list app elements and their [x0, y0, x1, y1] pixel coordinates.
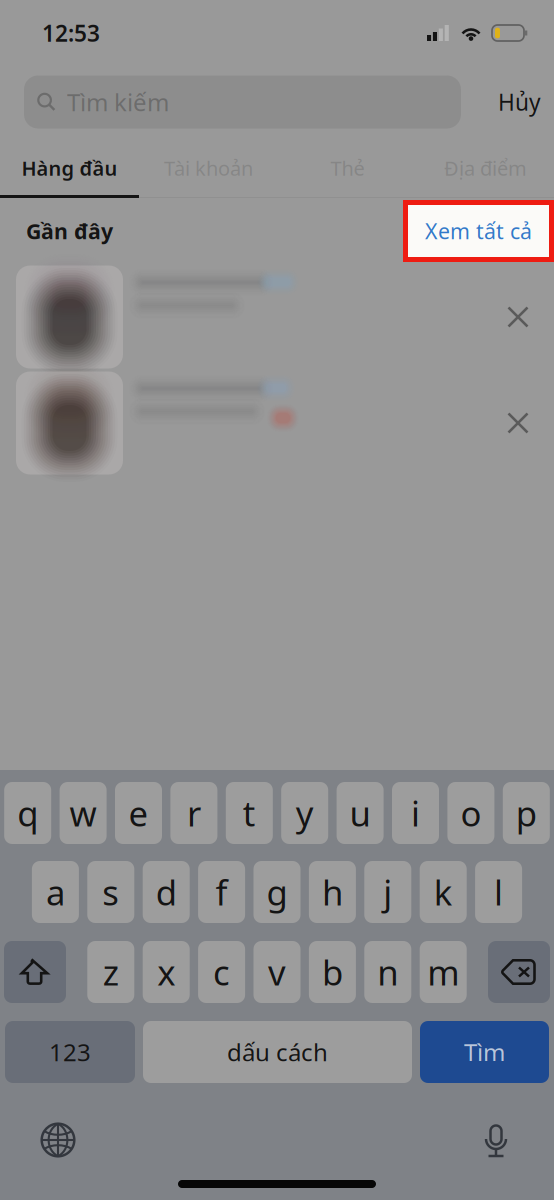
button[interactable]: i: [392, 782, 439, 844]
staticText: 12:53: [42, 18, 100, 48]
staticText: g: [266, 869, 287, 915]
staticText: d: [156, 869, 177, 915]
staticText: l: [494, 869, 503, 915]
staticText: Hủy: [498, 87, 541, 117]
staticText: Tìm kiếm: [67, 86, 169, 118]
staticText: 123: [49, 1036, 91, 1068]
button[interactable]: n: [364, 941, 411, 1003]
button[interactable]: r: [170, 782, 217, 844]
button[interactable]: d: [143, 861, 190, 923]
button[interactable]: Xem tất cả: [403, 200, 554, 262]
staticText: j: [383, 869, 392, 915]
button[interactable]: Tìm kiếm: [24, 75, 461, 128]
button[interactable]: g: [253, 861, 300, 923]
staticText: p: [516, 790, 537, 836]
button[interactable]: s: [87, 861, 134, 923]
button[interactable]: Đọc chính tả: [468, 1112, 524, 1168]
staticText: i: [411, 790, 420, 836]
button[interactable]: p: [503, 782, 550, 844]
button[interactable]: Hủy: [485, 75, 554, 128]
button[interactable]: dấu cách: [143, 1021, 412, 1083]
staticText: f: [216, 869, 228, 915]
button[interactable]: m: [420, 941, 467, 1003]
button[interactable]: Tài khoản: [139, 138, 278, 198]
button[interactable]: c: [198, 941, 245, 1003]
button[interactable]: l: [475, 861, 522, 923]
button[interactable]: w: [60, 782, 107, 844]
button[interactable]: q: [4, 782, 51, 844]
button[interactable]: b: [309, 941, 356, 1003]
staticText: Địa điểm: [444, 155, 527, 181]
staticText: dấu cách: [227, 1036, 328, 1068]
staticText: h: [322, 869, 343, 915]
button[interactable]: Tìm: [420, 1021, 549, 1083]
button[interactable]: k: [420, 861, 467, 923]
button[interactable]: Đổi bàn phím: [30, 1112, 86, 1168]
staticText: s: [102, 869, 119, 915]
button[interactable]: j: [364, 861, 411, 923]
staticText: k: [434, 869, 453, 915]
button[interactable]: x: [143, 941, 190, 1003]
button[interactable]: 123: [5, 1021, 135, 1083]
button[interactable]: Hàng đầu: [0, 138, 139, 198]
staticText: n: [377, 949, 398, 995]
button[interactable]: o: [447, 782, 494, 844]
button[interactable]: t: [226, 782, 273, 844]
staticText: Thẻ: [330, 155, 364, 181]
button[interactable]: a: [32, 861, 79, 923]
staticText: y: [296, 790, 314, 836]
staticText: t: [243, 790, 256, 836]
staticText: x: [157, 949, 175, 995]
staticText: m: [427, 949, 459, 995]
button[interactable]: Địa điểm: [417, 138, 554, 198]
button[interactable]: Xóa: [491, 290, 545, 344]
staticText: Tài khoản: [164, 155, 253, 181]
staticText: o: [460, 790, 481, 836]
button[interactable]: Shift: [4, 941, 66, 1003]
staticText: Gần đây: [26, 217, 113, 245]
staticText: Hàng đầu: [21, 155, 117, 181]
button[interactable]: Xóa: [491, 396, 545, 450]
staticText: c: [213, 949, 230, 995]
button[interactable]: u: [337, 782, 384, 844]
button[interactable]: h: [309, 861, 356, 923]
staticText: b: [322, 949, 343, 995]
staticText: Tìm: [464, 1036, 505, 1068]
staticText: z: [103, 949, 119, 995]
staticText: e: [128, 790, 148, 836]
staticText: a: [46, 869, 65, 915]
staticText: w: [70, 790, 97, 836]
staticText: v: [268, 949, 286, 995]
staticText: q: [17, 790, 38, 836]
staticText: u: [350, 790, 371, 836]
button[interactable]: z: [87, 941, 134, 1003]
staticText: r: [187, 790, 201, 836]
staticText: Xem tất cả: [425, 217, 532, 245]
button[interactable]: e: [115, 782, 162, 844]
button[interactable]: y: [281, 782, 328, 844]
button[interactable]: Xóa lùi: [488, 941, 550, 1003]
button[interactable]: v: [253, 941, 300, 1003]
button[interactable]: f: [198, 861, 245, 923]
